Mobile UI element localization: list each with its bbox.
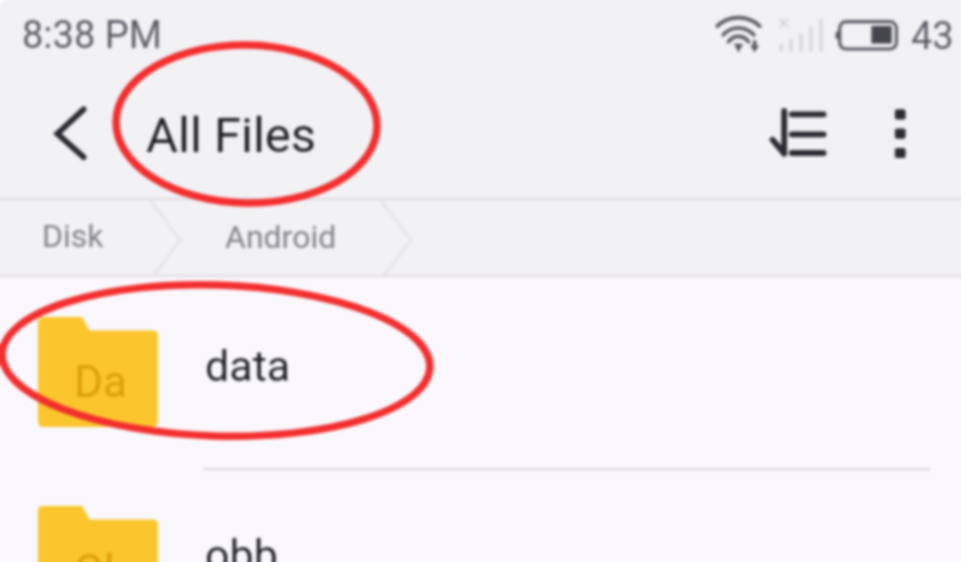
staticText: Da [74,356,127,408]
staticText: All Files [146,107,317,164]
staticText: 8:38 PM [22,13,162,58]
button[interactable]: Da [0,277,961,469]
staticText: data [205,341,291,391]
button[interactable]: More options [884,90,918,176]
button[interactable]: Ob [0,466,961,562]
button[interactable]: Sort [762,90,836,176]
button[interactable]: Android [225,218,337,256]
button[interactable]: Back [34,90,106,176]
button[interactable]: Disk [42,217,104,255]
staticText: 43 [911,14,954,59]
staticText: Ob [74,545,129,562]
staticText: obb [205,530,278,562]
